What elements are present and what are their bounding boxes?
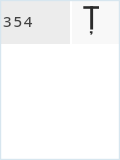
button[interactable]: Character T with comma below <box>72 0 120 44</box>
button[interactable]: 354 <box>0 0 70 44</box>
staticText: 354 <box>3 11 35 31</box>
